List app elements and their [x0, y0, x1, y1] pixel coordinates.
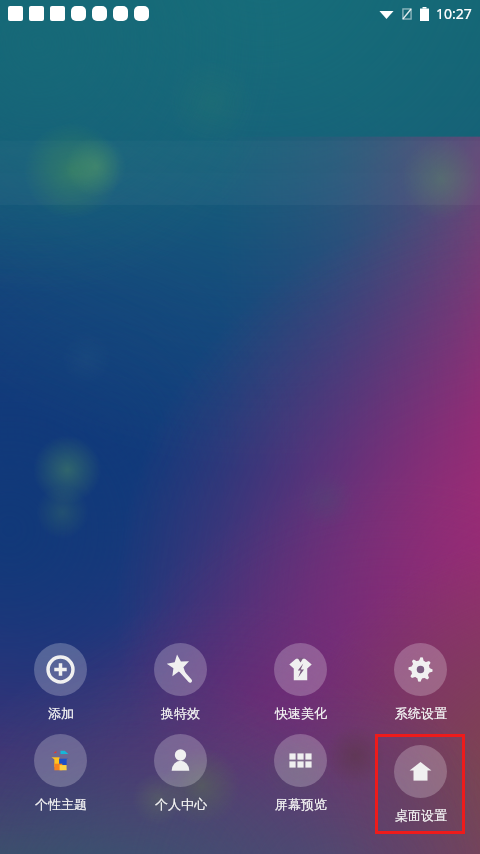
staticText: 桌面设置: [395, 807, 447, 823]
button[interactable]: 快速美化: [274, 643, 327, 721]
button[interactable]: 个性主题: [34, 734, 87, 812]
staticText: 快速美化: [275, 705, 327, 721]
staticText: 个性主题: [35, 796, 87, 812]
button[interactable]: 屏幕预览: [274, 734, 327, 812]
button[interactable]: 个人中心: [154, 734, 207, 812]
button[interactable]: 换特效: [154, 643, 207, 721]
staticText: 系统设置: [395, 705, 447, 721]
button[interactable]: 添加: [34, 643, 87, 721]
staticText: 屏幕预览: [275, 796, 327, 812]
staticText: 添加: [48, 705, 74, 721]
staticText: 个人中心: [155, 796, 207, 812]
button[interactable]: 系统设置: [394, 643, 447, 721]
staticText: 换特效: [161, 705, 200, 721]
staticText: 10:27: [436, 4, 472, 23]
button[interactable]: 桌面设置: [394, 745, 447, 823]
